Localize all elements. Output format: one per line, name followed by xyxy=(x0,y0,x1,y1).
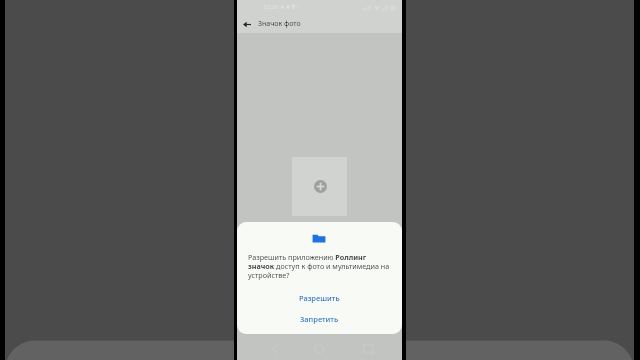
button[interactable]: Разрешить xyxy=(237,290,402,306)
staticText: Разрешить приложению Роллинг значок дост… xyxy=(248,252,392,280)
button[interactable]: Назад xyxy=(237,14,257,34)
button[interactable]: Запретить xyxy=(237,311,402,327)
staticText: 02:26 xyxy=(264,3,279,10)
staticText: Запретить xyxy=(300,314,339,324)
staticText: Разрешить xyxy=(299,293,340,303)
staticText: Значок фото xyxy=(258,19,301,29)
